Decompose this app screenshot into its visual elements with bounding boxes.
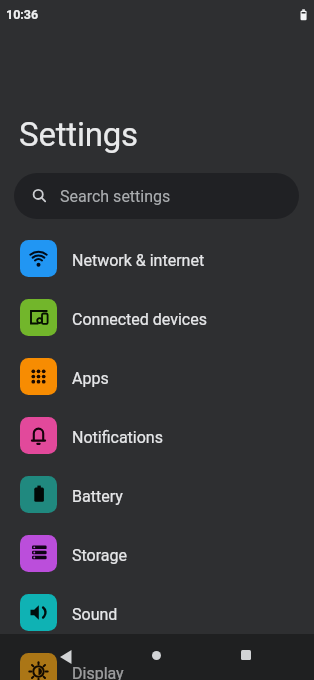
button[interactable]: Storage <box>0 524 314 583</box>
staticText: Storage <box>72 546 127 565</box>
button[interactable]: Battery <box>0 465 314 524</box>
button[interactable] <box>152 651 161 660</box>
button[interactable]: Apps <box>0 347 314 406</box>
staticText: Sound <box>72 605 118 624</box>
staticText: Battery <box>72 487 123 506</box>
button[interactable] <box>241 650 251 660</box>
staticText: Apps <box>72 369 109 388</box>
staticText: Display <box>72 664 124 680</box>
button[interactable]: Sound <box>0 583 314 642</box>
staticText: Settings <box>19 115 138 154</box>
button[interactable] <box>55 645 77 665</box>
button[interactable]: Search settings <box>14 173 299 219</box>
button[interactable]: Notifications <box>0 406 314 465</box>
staticText: Search settings <box>60 187 171 206</box>
button[interactable]: Network & internet <box>0 229 314 288</box>
button[interactable]: Connected devices <box>0 288 314 347</box>
button[interactable]: Display <box>0 642 314 680</box>
staticText: 10:36 <box>6 7 39 22</box>
staticText: Notifications <box>72 428 163 447</box>
staticText: Network & internet <box>72 251 205 270</box>
staticText: Connected devices <box>72 310 207 329</box>
